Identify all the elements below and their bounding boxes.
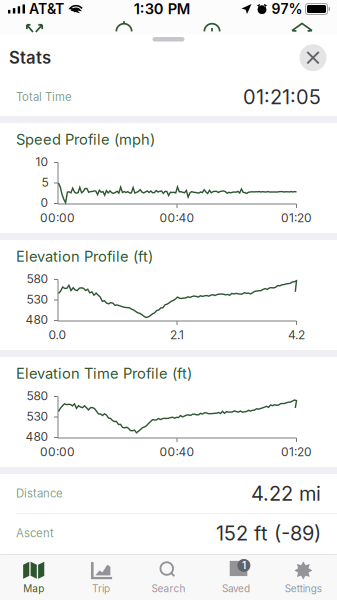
staticText: 530 <box>26 292 48 306</box>
staticText: Settings <box>285 582 322 595</box>
staticText: 480 <box>25 312 48 327</box>
staticText: Elevation Time Profile (ft) <box>16 364 192 382</box>
staticText: 4.2 <box>288 327 305 342</box>
staticText: 152 ft (-89) <box>216 521 321 545</box>
staticText: Search <box>151 582 185 595</box>
staticText: Total Time <box>16 90 72 104</box>
staticText: 00:00 <box>40 210 75 225</box>
staticText: 580 <box>26 272 48 286</box>
button[interactable]: Trip <box>67 554 135 600</box>
staticText: 00:40 <box>159 444 194 459</box>
staticText: 97% <box>271 0 302 17</box>
staticText: 01:20 <box>281 444 312 459</box>
staticText: 01:20 <box>281 210 312 225</box>
staticText: Stats <box>9 47 51 68</box>
staticText: 00:00 <box>40 444 75 459</box>
button[interactable]: 1 <box>202 554 270 600</box>
staticText: Saved <box>222 582 250 595</box>
staticText: 00:40 <box>159 210 194 225</box>
staticText: Elevation Profile (ft) <box>16 247 153 265</box>
staticText: 4.22 mi <box>251 481 321 506</box>
staticText: 10 <box>35 155 48 169</box>
staticText: 0.0 <box>48 327 66 342</box>
staticText: Trip <box>92 582 110 595</box>
staticText: 0 <box>40 195 48 210</box>
staticText: 5 <box>41 175 48 189</box>
staticText: Ascent <box>16 526 54 540</box>
staticText: AT&T <box>29 0 64 17</box>
staticText: 530 <box>26 409 48 423</box>
staticText: 1:30 PM <box>134 0 191 18</box>
staticText: Map <box>23 582 44 595</box>
staticText: Speed Profile (mph) <box>16 130 155 148</box>
staticText: Distance <box>16 487 63 500</box>
staticText: 480 <box>25 429 48 444</box>
button[interactable]: Settings <box>270 554 337 600</box>
button[interactable]: Map <box>0 554 67 600</box>
button[interactable]: Close <box>296 41 329 74</box>
staticText: 1 <box>242 559 246 571</box>
staticText: 2.1 <box>170 327 184 342</box>
staticText: 580 <box>26 389 48 403</box>
button[interactable]: Search <box>135 554 202 600</box>
staticText: 01:21:05 <box>243 85 321 109</box>
